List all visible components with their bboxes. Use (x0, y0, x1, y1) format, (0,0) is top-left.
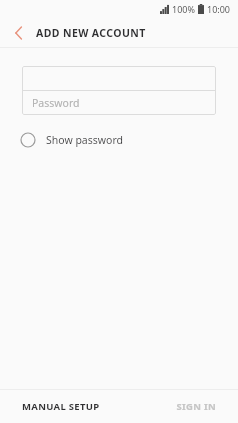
staticText: 100% (172, 3, 195, 15)
staticText: Show password (46, 133, 123, 147)
button[interactable] (22, 66, 216, 90)
staticText: MANUAL SETUP (22, 400, 100, 413)
button[interactable]: Password (22, 91, 216, 115)
button[interactable]: MANUAL SETUP (0, 390, 119, 423)
staticText: SIGN IN (176, 400, 216, 413)
staticText: Password (32, 96, 80, 110)
button[interactable]: Back (0, 18, 36, 47)
button[interactable]: Show password (18, 127, 123, 153)
button[interactable]: SIGN IN (119, 390, 238, 423)
staticText: ADD NEW ACCOUNT (36, 26, 146, 40)
staticText: 10:00 (207, 3, 231, 15)
